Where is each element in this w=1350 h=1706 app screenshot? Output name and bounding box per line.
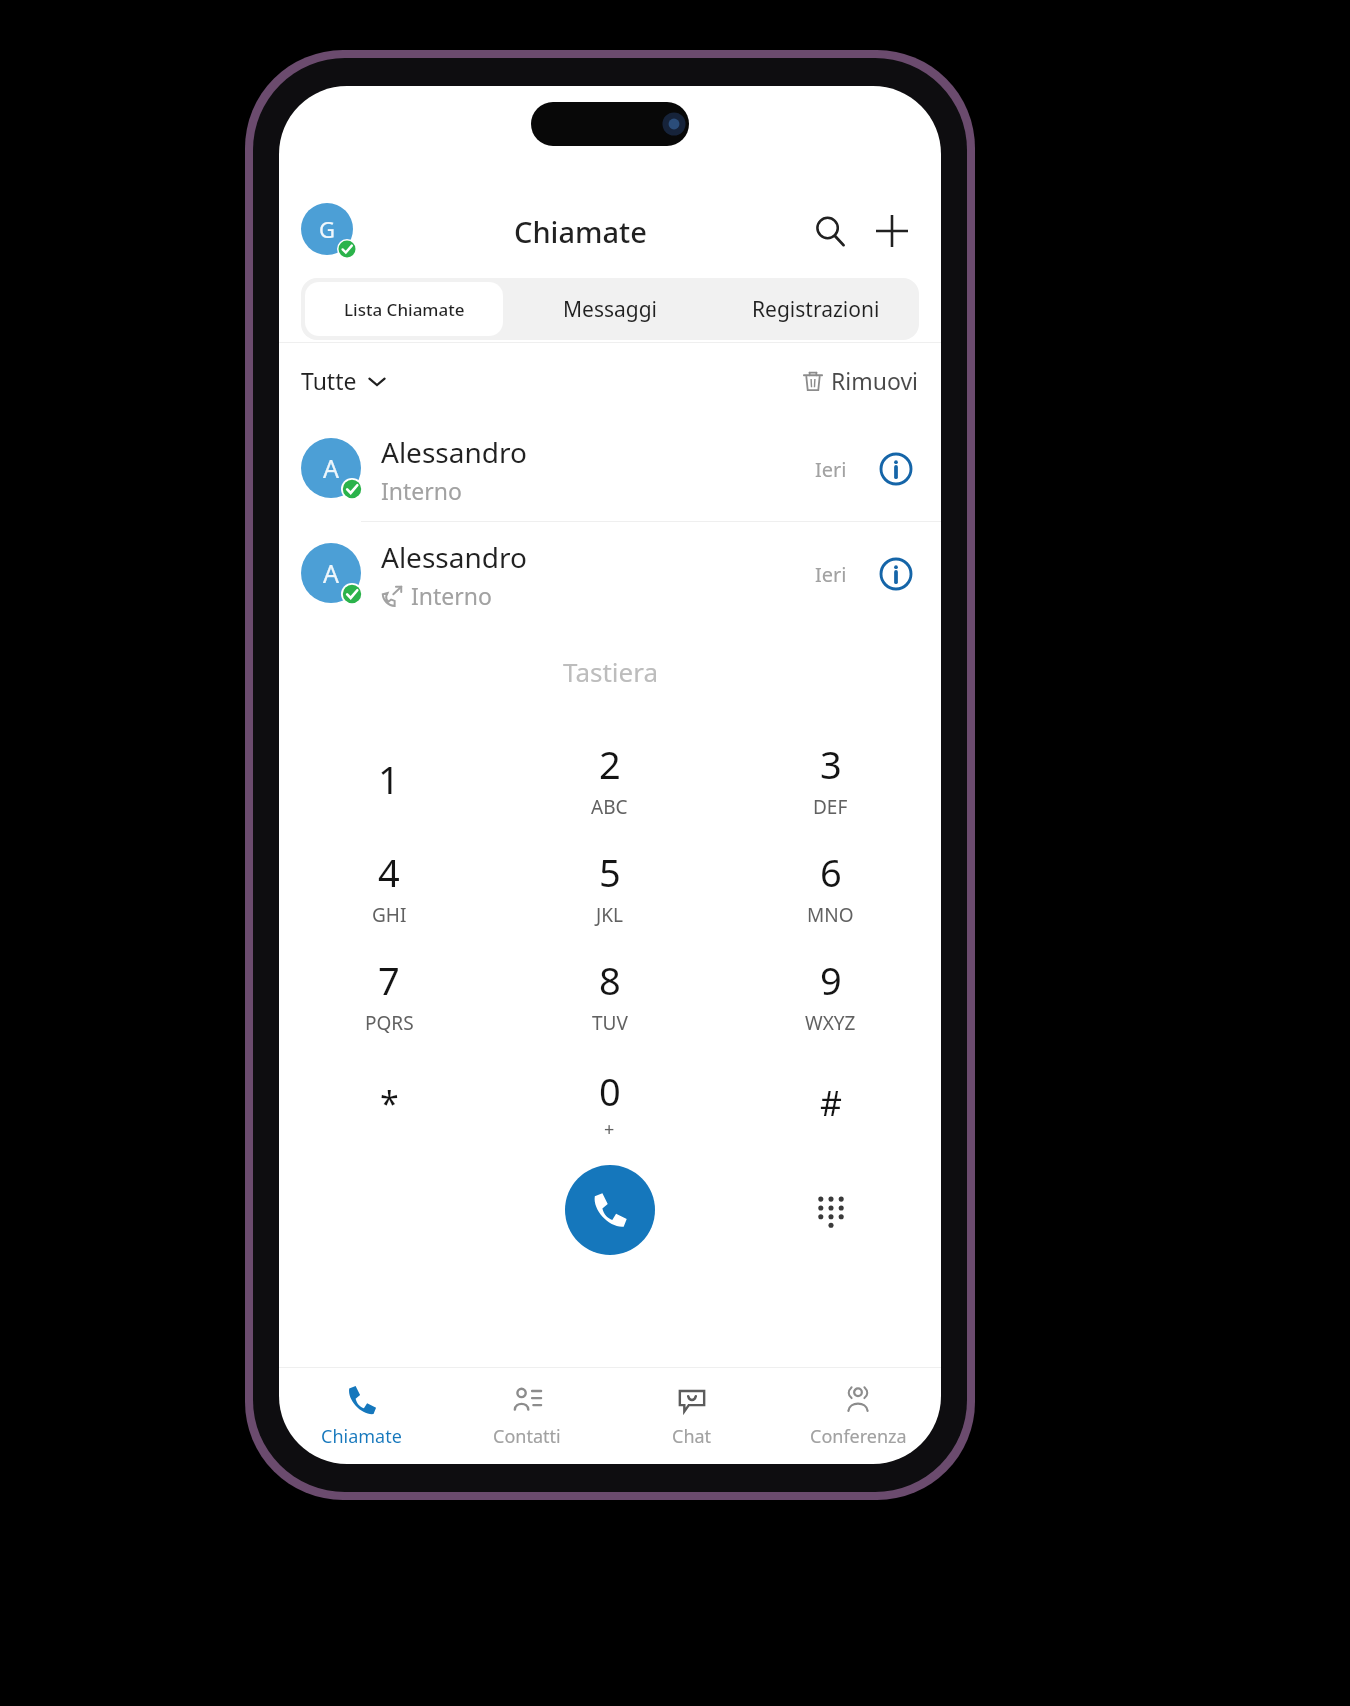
button[interactable]: Messaggi [507, 278, 713, 340]
button[interactable]: 9 [720, 941, 941, 1049]
button[interactable]: A [279, 417, 941, 521]
staticText: Ieri [815, 456, 847, 483]
staticText: Tutte [301, 365, 357, 396]
staticText: 0 [599, 1065, 621, 1117]
button[interactable]: Lista Chiamate [305, 282, 503, 336]
staticText: TUV [592, 1010, 628, 1036]
staticText: Registrazioni [752, 295, 880, 324]
staticText: Chiamate [514, 212, 647, 251]
staticText: + [604, 1117, 615, 1142]
staticText: 8 [599, 954, 621, 1006]
button[interactable]: A [279, 522, 941, 626]
button[interactable]: Rimuovi [801, 365, 919, 396]
staticText: 1 [378, 753, 400, 805]
staticText: Alessandro [381, 433, 527, 471]
button[interactable]: 1 [279, 725, 499, 833]
staticText: G [319, 214, 336, 244]
button[interactable]: * [279, 1049, 499, 1157]
button[interactable]: Hide keypad [795, 1174, 867, 1246]
staticText: 7 [378, 954, 400, 1006]
staticText: DEF [813, 794, 848, 820]
staticText: * [380, 1080, 399, 1126]
button[interactable]: 3 [720, 725, 941, 833]
staticText: 9 [820, 954, 842, 1006]
staticText: A [323, 451, 339, 485]
staticText: Contatti [493, 1424, 561, 1449]
staticText: GHI [372, 902, 407, 928]
staticText: Ieri [815, 561, 847, 588]
button[interactable]: 7 [279, 941, 499, 1049]
staticText: WXYZ [805, 1010, 856, 1036]
staticText: # [820, 1080, 842, 1126]
button[interactable]: Tutte [301, 365, 387, 396]
staticText: Conferenza [810, 1424, 907, 1449]
button[interactable]: 8 [499, 941, 720, 1049]
staticText: Interno [381, 475, 462, 506]
staticText: 3 [820, 738, 842, 790]
staticText: 2 [599, 738, 621, 790]
staticText: MNO [807, 902, 854, 928]
staticText: 6 [820, 846, 842, 898]
button[interactable]: Chiamate [279, 1368, 444, 1464]
staticText: 4 [378, 846, 400, 898]
button[interactable]: Registrazioni [713, 278, 919, 340]
staticText: Rimuovi [831, 365, 919, 396]
button[interactable]: Info [873, 551, 919, 597]
staticText: Tastiera [563, 654, 658, 689]
button[interactable]: Account [301, 203, 357, 259]
button[interactable]: Call [565, 1165, 655, 1255]
staticText: Interno [411, 580, 492, 611]
button[interactable]: 4 [279, 833, 499, 941]
staticText: Alessandro [381, 538, 527, 576]
button[interactable]: 5 [499, 833, 720, 941]
button[interactable]: 0 [499, 1049, 720, 1157]
button[interactable]: 6 [720, 833, 941, 941]
staticText: PQRS [365, 1010, 414, 1036]
button[interactable]: 2 [499, 725, 720, 833]
staticText: Lista Chiamate [344, 298, 465, 321]
staticText: JKL [596, 902, 623, 928]
button[interactable]: Search [803, 204, 857, 258]
button[interactable]: Add [865, 204, 919, 258]
button[interactable]: Contatti [444, 1368, 609, 1464]
staticText: Chat [672, 1424, 712, 1449]
staticText: 5 [599, 846, 621, 898]
button[interactable]: Conferenza [775, 1368, 941, 1464]
button[interactable]: Info [873, 446, 919, 492]
button[interactable]: Chat [609, 1368, 775, 1464]
staticText: ABC [591, 794, 628, 820]
staticText: Chiamate [321, 1424, 402, 1449]
staticText: Messaggi [563, 295, 658, 324]
button[interactable]: # [720, 1049, 941, 1157]
staticText: A [323, 556, 339, 590]
